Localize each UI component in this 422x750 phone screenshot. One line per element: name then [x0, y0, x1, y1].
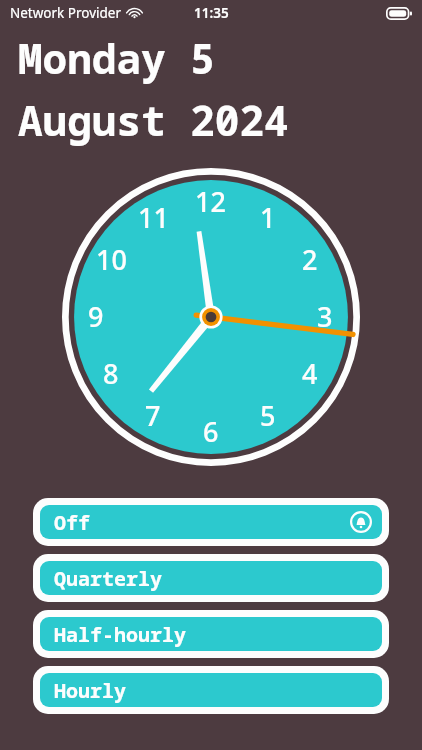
staticText: 1 — [260, 199, 276, 236]
staticText: 11:35 — [194, 4, 229, 22]
staticText: 6 — [203, 413, 219, 450]
staticText: 2 — [302, 241, 318, 278]
button[interactable]: Hourly — [33, 666, 389, 714]
staticText: Monday 5 — [18, 30, 404, 86]
staticText: 8 — [103, 355, 119, 392]
staticText: Half-hourly — [54, 621, 186, 648]
staticText: 7 — [145, 397, 161, 434]
staticText: Quarterly — [54, 565, 162, 592]
staticText: Network Provider — [10, 4, 122, 22]
staticText: 9 — [88, 298, 104, 335]
staticText: 11 — [138, 199, 169, 236]
staticText: 10 — [96, 241, 127, 278]
button[interactable]: Quarterly — [33, 554, 389, 602]
other: Alarm off — [350, 511, 372, 533]
button[interactable]: Half-hourly — [33, 610, 389, 658]
staticText: 4 — [302, 355, 318, 392]
staticText: 5 — [260, 397, 276, 434]
button[interactable]: Off — [33, 498, 389, 546]
staticText: 12 — [195, 183, 226, 220]
staticText: 3 — [317, 298, 333, 335]
staticText: Hourly — [54, 677, 126, 704]
staticText: August 2024 — [18, 92, 404, 148]
staticText: Off — [54, 509, 90, 536]
